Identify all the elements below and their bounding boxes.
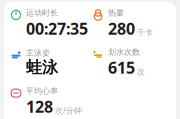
staticText: 热量 [108, 8, 124, 18]
staticText: 00:27:35 [26, 18, 88, 39]
button[interactable]: 划水次数 [92, 47, 170, 78]
staticText: 次/分钟 [55, 105, 82, 116]
staticText: 平均心率 [26, 86, 58, 96]
button[interactable]: 主泳姿 [10, 48, 92, 77]
staticText: 蛙泳 [26, 58, 58, 77]
button[interactable]: 平均心率 [10, 86, 92, 117]
button[interactable]: 运动时长 [10, 8, 92, 39]
staticText: 次 [137, 67, 145, 77]
staticText: 千卡 [137, 28, 153, 37]
staticText: 运动时长 [26, 8, 58, 18]
staticText: 128 [26, 96, 53, 117]
staticText: 280 [108, 18, 135, 39]
button[interactable]: 热量 [92, 8, 170, 39]
staticText: 615 [108, 57, 135, 78]
staticText: 主泳姿 [26, 48, 50, 58]
staticText: 划水次数 [108, 47, 140, 57]
